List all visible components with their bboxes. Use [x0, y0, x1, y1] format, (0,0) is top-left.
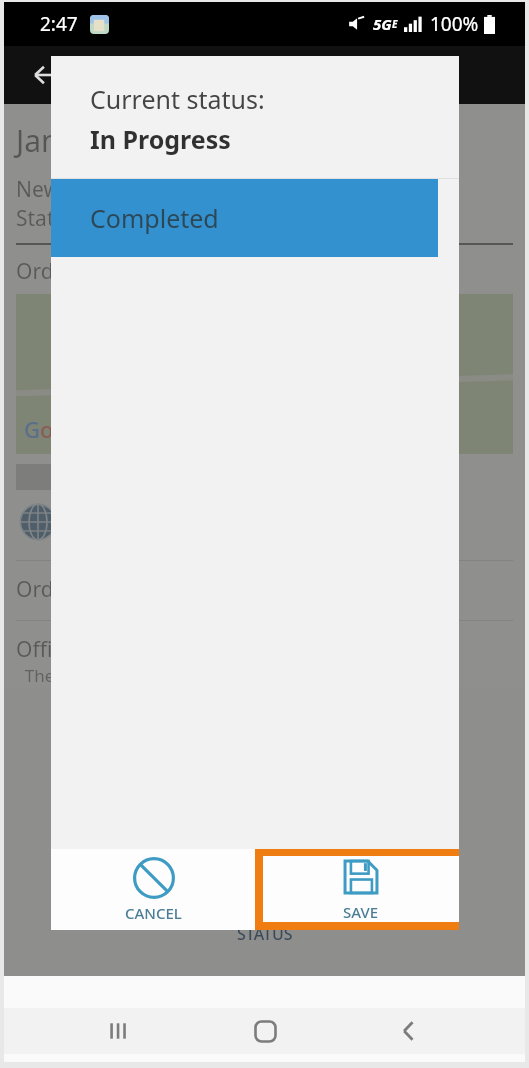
staticText: E [392, 17, 398, 31]
staticText: 100% [430, 11, 479, 37]
staticText: SAVE [343, 902, 379, 922]
button[interactable]: CANCEL [51, 849, 255, 930]
button[interactable]: Back [381, 1008, 437, 1054]
staticText: In Progress [90, 122, 231, 156]
staticText: 2:47 [40, 11, 78, 37]
staticText: Completed [90, 201, 219, 235]
button[interactable]: SAVE [255, 849, 459, 930]
staticText: Jane D [16, 120, 107, 161]
staticText: STATUS [237, 923, 293, 945]
staticText: G [24, 414, 40, 444]
staticText: The customer requested [16, 664, 221, 687]
staticText: Order notes [16, 575, 135, 604]
staticText: Status [16, 204, 78, 233]
staticText: 5G [373, 14, 392, 34]
staticText: New Customer [16, 175, 163, 204]
button[interactable]: Recent apps [92, 1008, 148, 1054]
staticText: Order address [16, 257, 158, 286]
staticText: o [40, 414, 54, 444]
staticText: CANCEL [125, 903, 182, 923]
button[interactable]: Home [237, 1008, 293, 1054]
staticText: Current status: [90, 82, 265, 116]
button[interactable]: Back [26, 55, 66, 95]
staticText: Office notes [16, 635, 135, 664]
button[interactable]: Open website [18, 502, 58, 542]
button[interactable]: Completed [51, 179, 438, 257]
